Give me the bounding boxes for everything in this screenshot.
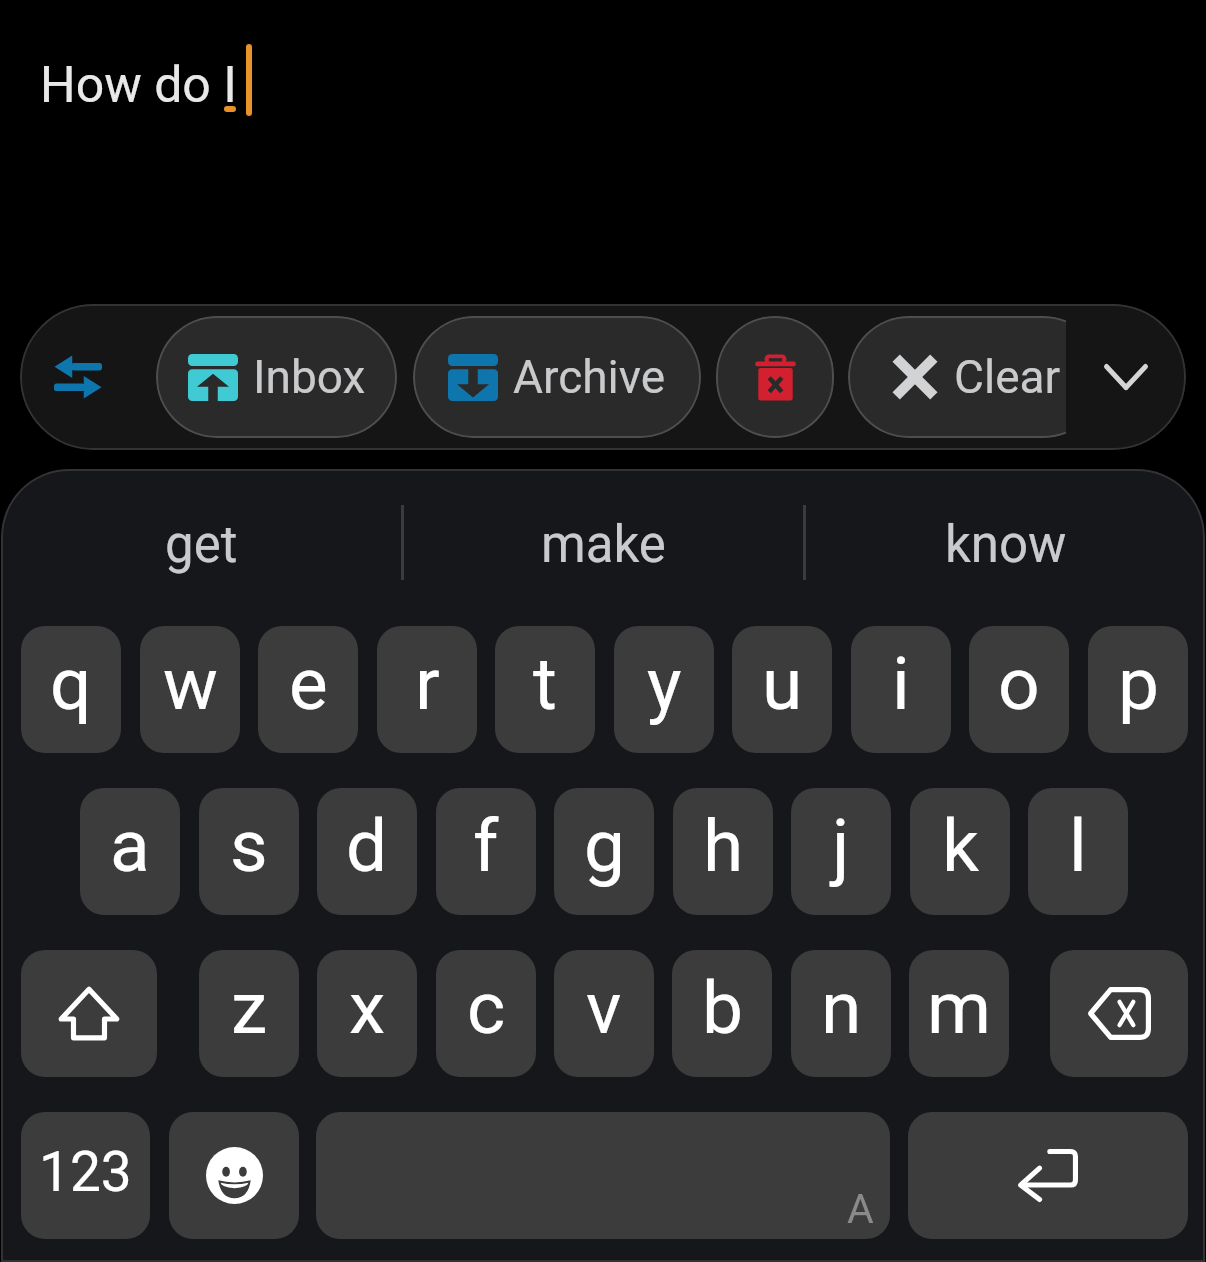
staticText: e	[289, 641, 328, 727]
button[interactable]: Shift	[21, 950, 157, 1077]
button[interactable]: p	[1088, 626, 1188, 753]
staticText: 123	[39, 1140, 132, 1204]
staticText: y	[647, 641, 682, 727]
staticText: get	[165, 515, 238, 575]
button[interactable]: m	[909, 950, 1009, 1077]
staticText: A	[847, 1185, 874, 1233]
staticText: Clear	[954, 350, 1061, 404]
button[interactable]	[716, 316, 834, 438]
button[interactable]: Inbox	[156, 316, 397, 438]
staticText: z	[231, 965, 268, 1051]
button[interactable]: b	[672, 950, 772, 1077]
staticText: g	[584, 803, 625, 889]
button[interactable]: f	[436, 788, 536, 915]
button[interactable]: v	[554, 950, 654, 1077]
staticText: t	[533, 641, 557, 727]
button[interactable]: x	[317, 950, 417, 1077]
staticText: l	[1069, 803, 1087, 889]
button[interactable]: Backspace	[1050, 950, 1188, 1077]
button[interactable]: g	[554, 788, 654, 915]
staticText: j	[832, 803, 850, 889]
staticText: b	[702, 965, 743, 1051]
button[interactable]: Expand actions	[1066, 304, 1186, 450]
staticText: w	[163, 641, 218, 727]
button[interactable]: 123	[21, 1112, 150, 1239]
button[interactable]: q	[21, 626, 121, 753]
button[interactable]: k	[910, 788, 1010, 915]
button[interactable]: n	[791, 950, 891, 1077]
staticText: Inbox	[253, 350, 366, 404]
staticText: r	[415, 641, 440, 727]
staticText: m	[927, 965, 992, 1051]
button[interactable]: Emoji	[169, 1112, 299, 1239]
staticText: f	[473, 803, 499, 889]
button[interactable]: know	[806, 469, 1205, 626]
button[interactable]: s	[199, 788, 299, 915]
staticText: v	[586, 965, 622, 1051]
button[interactable]: make	[404, 469, 803, 626]
button[interactable]: Clear	[848, 316, 1066, 438]
button[interactable]: get	[1, 469, 401, 626]
button[interactable]: z	[199, 950, 299, 1077]
button[interactable]: w	[140, 626, 240, 753]
button[interactable]: y	[614, 626, 714, 753]
button[interactable]: a	[80, 788, 180, 915]
staticText: k	[942, 803, 979, 889]
button[interactable]: c	[436, 950, 536, 1077]
staticText: i	[892, 641, 910, 727]
staticText: x	[349, 965, 386, 1051]
staticText: p	[1118, 641, 1159, 727]
button[interactable]: j	[791, 788, 891, 915]
staticText: make	[541, 515, 666, 575]
button[interactable]: h	[673, 788, 773, 915]
staticText: Archive	[513, 350, 666, 404]
button[interactable]: d	[317, 788, 417, 915]
staticText: d	[346, 803, 388, 889]
staticText: a	[110, 803, 150, 889]
button[interactable]: Archive	[413, 316, 701, 438]
button[interactable]: u	[732, 626, 832, 753]
staticText: s	[230, 803, 268, 889]
staticText: know	[945, 515, 1067, 575]
button[interactable]: e	[258, 626, 358, 753]
button[interactable]: i	[851, 626, 951, 753]
staticText: n	[821, 965, 862, 1051]
staticText: How do I	[40, 56, 237, 115]
button[interactable]: t	[495, 626, 595, 753]
button[interactable]: Enter	[908, 1112, 1188, 1239]
button[interactable]: o	[969, 626, 1069, 753]
button[interactable]: r	[377, 626, 477, 753]
staticText: u	[762, 641, 803, 727]
staticText: o	[998, 641, 1040, 727]
button[interactable]: Switch keyboard	[30, 329, 126, 425]
staticText: q	[50, 641, 92, 727]
button[interactable]: l	[1028, 788, 1128, 915]
staticText: h	[703, 803, 744, 889]
staticText: c	[467, 965, 506, 1051]
button[interactable]: Space	[316, 1112, 890, 1239]
